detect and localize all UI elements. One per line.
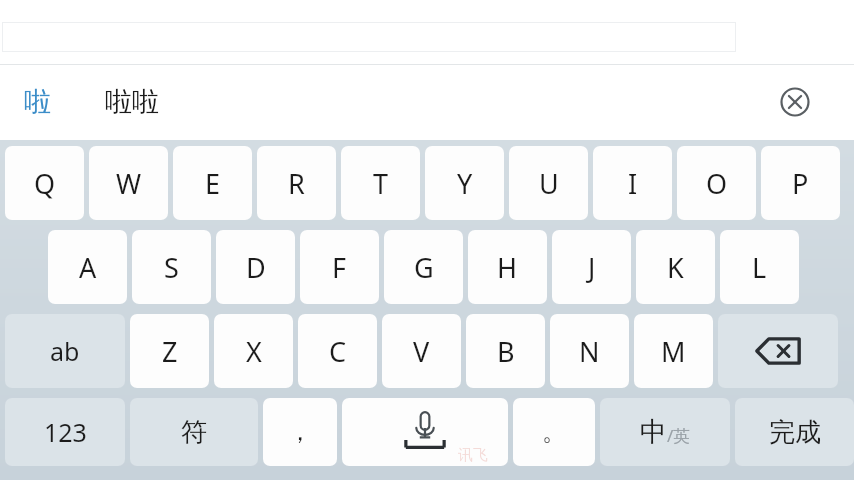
staticText: 啦啦: [105, 85, 159, 119]
staticText: U: [539, 165, 559, 202]
button[interactable]: D: [216, 230, 295, 304]
button[interactable]: U: [509, 146, 588, 220]
button[interactable]: P: [761, 146, 840, 220]
button[interactable]: Switch Chinese English: [600, 398, 730, 466]
staticText: P: [792, 165, 809, 202]
button[interactable]: Z: [130, 314, 209, 388]
staticText: T: [373, 165, 389, 202]
button[interactable]: J: [552, 230, 631, 304]
staticText: 讯飞: [458, 446, 488, 465]
staticText: D: [246, 249, 266, 286]
staticText: M: [661, 333, 686, 370]
staticText: F: [332, 249, 347, 286]
button[interactable]: A: [48, 230, 127, 304]
staticText: /英: [667, 424, 691, 447]
button[interactable]: H: [468, 230, 547, 304]
staticText: G: [414, 249, 434, 286]
staticText: X: [246, 333, 262, 370]
staticText: C: [329, 333, 347, 370]
staticText: L: [752, 249, 767, 286]
staticText: R: [288, 165, 305, 202]
button[interactable]: X: [214, 314, 293, 388]
staticText: 完成: [769, 416, 821, 449]
button[interactable]: 。: [513, 398, 595, 466]
button[interactable]: K: [636, 230, 715, 304]
button[interactable]: Q: [5, 146, 84, 220]
staticText: ，: [288, 417, 312, 447]
button[interactable]: B: [466, 314, 545, 388]
staticText: N: [579, 333, 600, 370]
button[interactable]: N: [550, 314, 629, 388]
button[interactable]: 啦: [24, 85, 51, 119]
button[interactable]: 符: [130, 398, 258, 466]
button[interactable]: M: [634, 314, 713, 388]
staticText: J: [588, 249, 596, 286]
button[interactable]: Space, voice input: [342, 398, 508, 466]
button[interactable]: 啦啦: [105, 85, 159, 119]
staticText: E: [205, 165, 221, 202]
button[interactable]: F: [300, 230, 379, 304]
button[interactable]: Backspace: [718, 314, 838, 388]
button[interactable]: C: [298, 314, 377, 388]
button[interactable]: I: [593, 146, 672, 220]
staticText: H: [497, 249, 518, 286]
button[interactable]: R: [257, 146, 336, 220]
staticText: 。: [542, 417, 566, 447]
button[interactable]: O: [677, 146, 756, 220]
staticText: K: [667, 249, 684, 286]
button[interactable]: Close keyboard: [766, 73, 824, 131]
button[interactable]: G: [384, 230, 463, 304]
staticText: Z: [162, 333, 178, 370]
staticText: W: [116, 165, 142, 202]
staticText: ab: [50, 334, 80, 368]
staticText: I: [628, 165, 638, 202]
button[interactable]: W: [89, 146, 168, 220]
staticText: 中: [640, 415, 667, 449]
button[interactable]: ab: [5, 314, 125, 388]
button[interactable]: 123: [5, 398, 125, 466]
staticText: Q: [34, 165, 56, 202]
button[interactable]: L: [720, 230, 799, 304]
staticText: V: [413, 333, 430, 370]
staticText: B: [497, 333, 515, 370]
staticText: 啦: [24, 85, 51, 119]
staticText: A: [79, 249, 97, 286]
button[interactable]: [2, 22, 736, 52]
button[interactable]: 完成: [735, 398, 854, 466]
button[interactable]: T: [341, 146, 420, 220]
staticText: S: [164, 249, 179, 286]
button[interactable]: ，: [263, 398, 337, 466]
staticText: 符: [181, 416, 207, 449]
button[interactable]: Y: [425, 146, 504, 220]
staticText: Y: [457, 165, 473, 202]
button[interactable]: V: [382, 314, 461, 388]
button[interactable]: S: [132, 230, 211, 304]
staticText: O: [706, 165, 728, 202]
staticText: 123: [44, 415, 87, 449]
button[interactable]: E: [173, 146, 252, 220]
